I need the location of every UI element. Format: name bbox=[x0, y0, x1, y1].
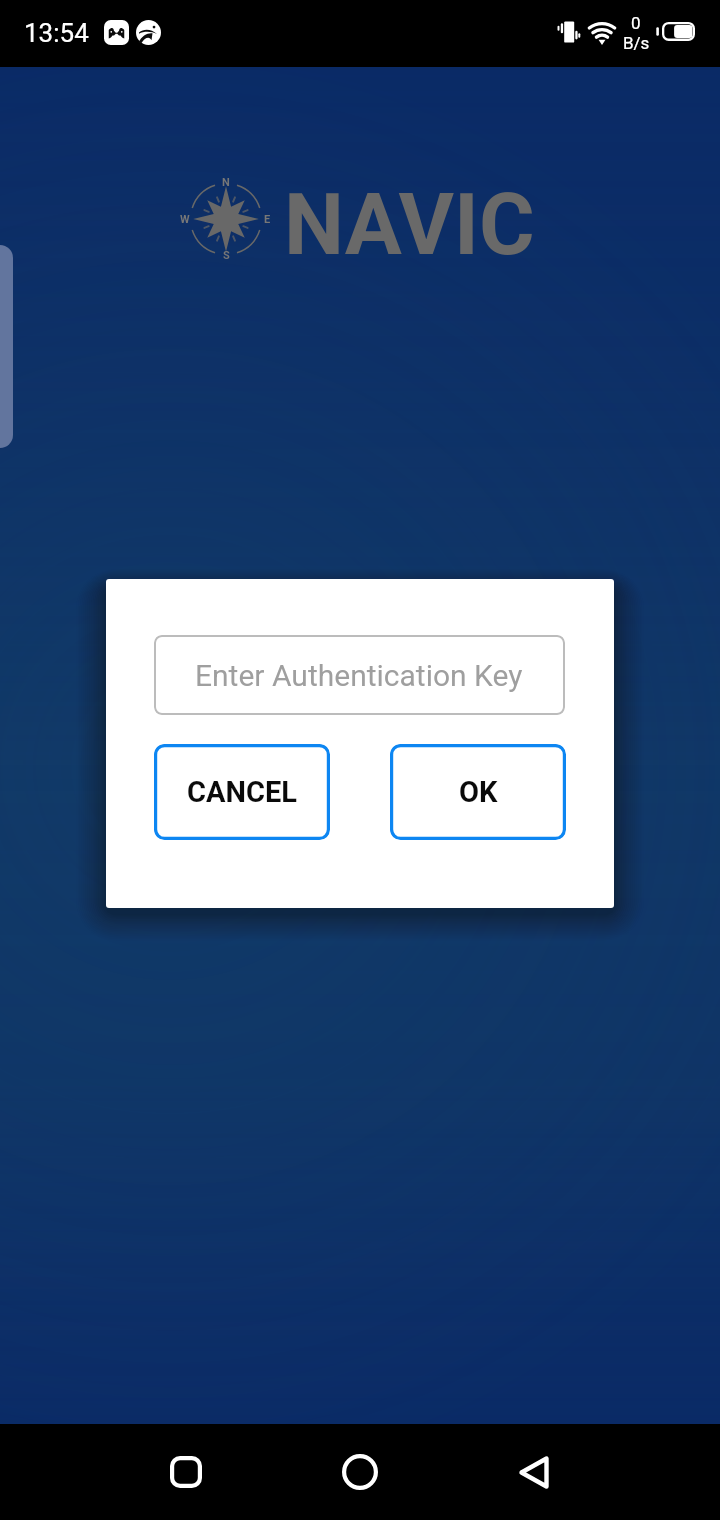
staticText: B/s bbox=[623, 33, 650, 53]
staticText: 0 bbox=[631, 13, 641, 33]
staticText: W bbox=[180, 213, 190, 226]
button[interactable]: Back bbox=[498, 1436, 570, 1508]
button[interactable]: Recent apps bbox=[150, 1436, 222, 1508]
button[interactable]: Home bbox=[324, 1436, 396, 1508]
button[interactable]: CANCEL bbox=[154, 744, 330, 840]
staticText: S bbox=[223, 249, 230, 262]
button[interactable]: Enter Authentication Key bbox=[154, 635, 565, 715]
button[interactable]: OK bbox=[390, 744, 566, 840]
staticText: OK bbox=[459, 775, 498, 809]
staticText: 13:54 bbox=[24, 18, 89, 48]
staticText: CANCEL bbox=[187, 775, 297, 809]
staticText: NAVIC bbox=[284, 175, 535, 275]
staticText: Enter Authentication Key bbox=[195, 658, 523, 693]
staticText: N bbox=[222, 176, 230, 189]
staticText: E bbox=[264, 213, 271, 226]
